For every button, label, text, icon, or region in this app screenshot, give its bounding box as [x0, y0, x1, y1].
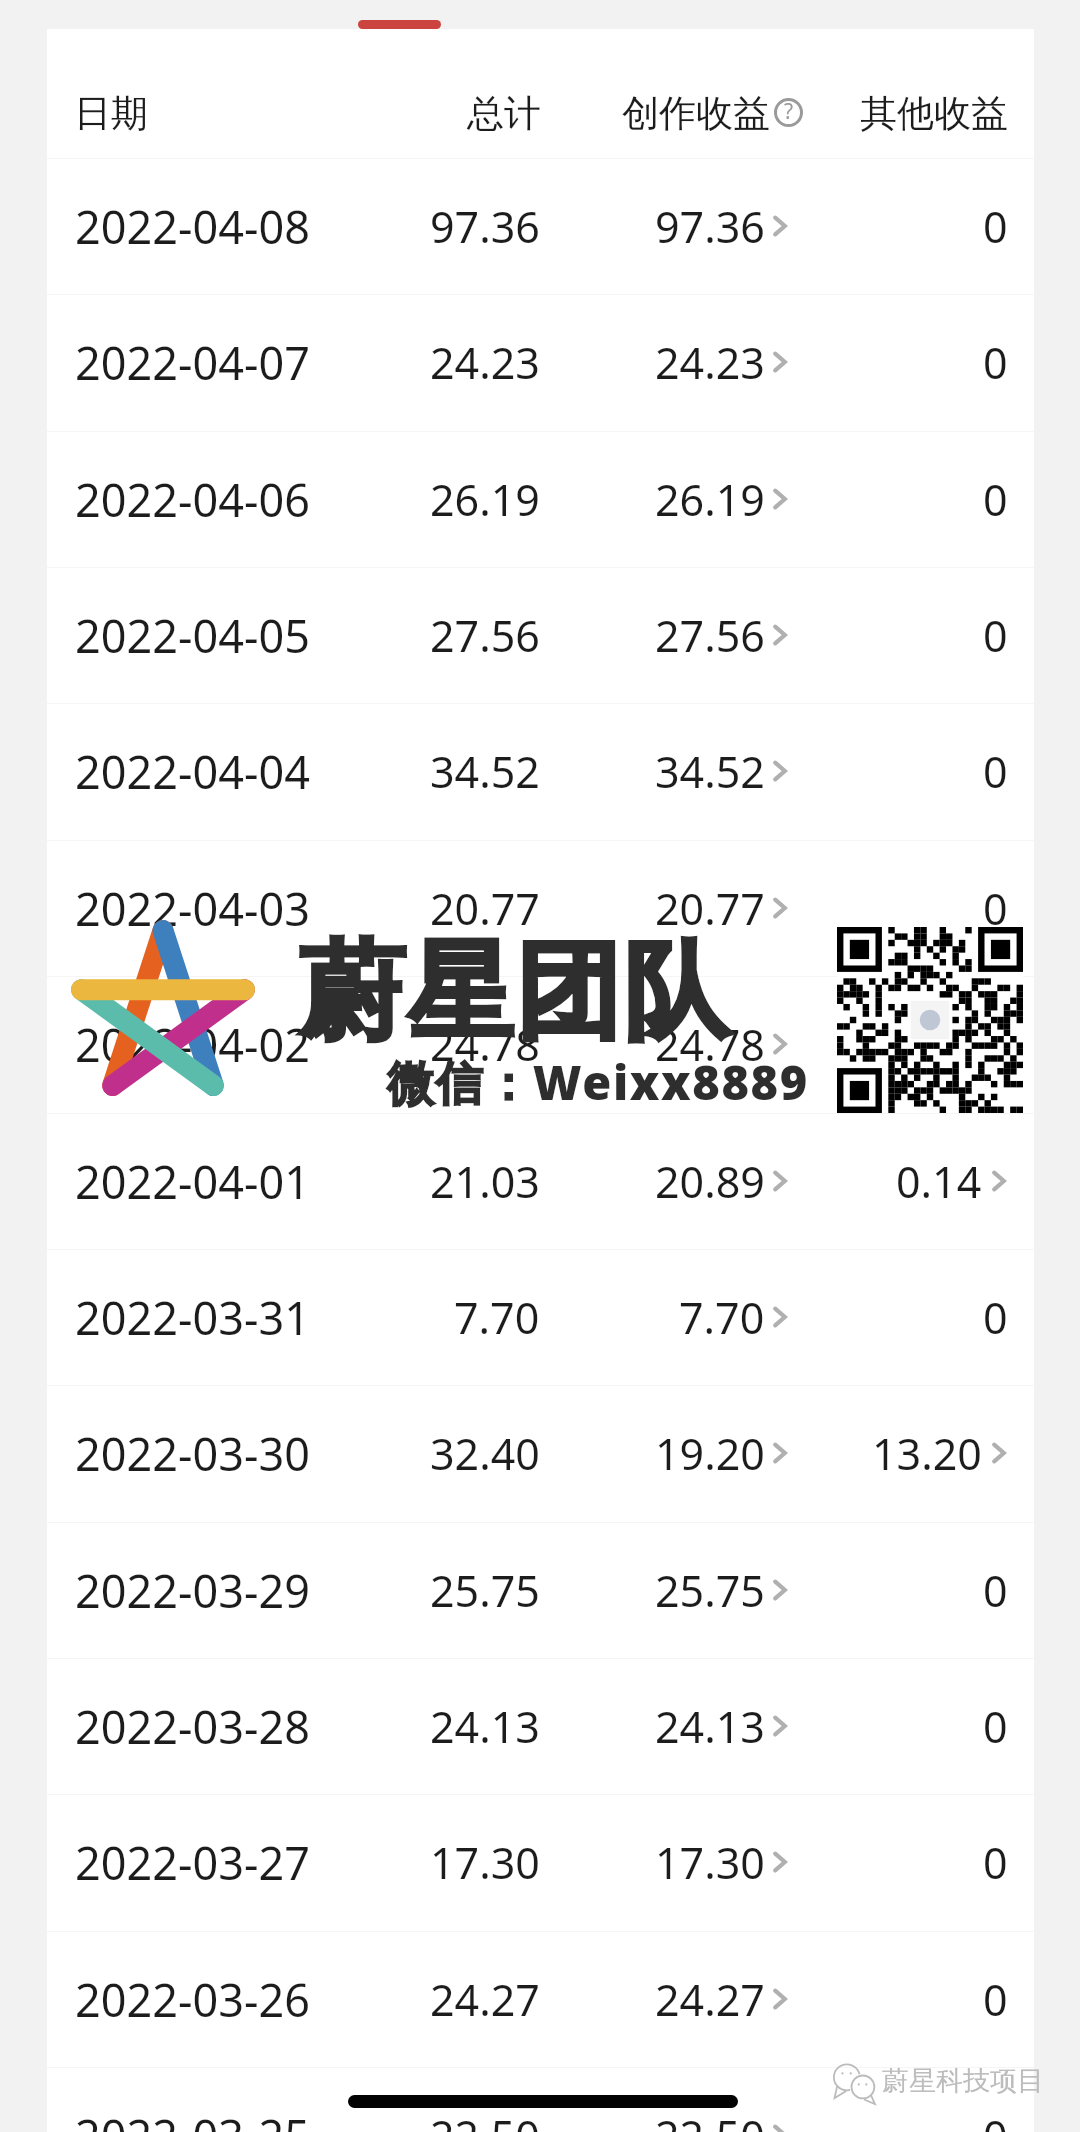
button[interactable]: 2022-03-31	[47, 1249, 1034, 1385]
staticText: 2022-04-01	[75, 1151, 310, 1212]
staticText: 97.36	[655, 197, 765, 256]
button[interactable]: 2022-04-01	[47, 1113, 1034, 1249]
staticText: 0	[983, 1288, 1008, 1347]
staticText: 24.27	[430, 1970, 540, 2029]
staticText: 2022-03-28	[75, 1696, 310, 1757]
staticText: 19.20	[655, 1424, 765, 1483]
staticText: 24.23	[430, 333, 540, 392]
staticText: 7.70	[679, 1288, 765, 1347]
staticText: 2022-04-04	[75, 741, 310, 802]
staticText: 2022-03-31	[75, 1287, 310, 1348]
staticText: 24.13	[430, 1697, 540, 1756]
staticText: 26.19	[430, 470, 540, 529]
staticText: 0	[983, 1697, 1008, 1756]
staticText: 20.77	[655, 879, 765, 938]
staticText: 24.78	[655, 1015, 765, 1074]
staticText: ?	[784, 97, 794, 126]
staticText: 2022-04-08	[75, 196, 310, 257]
staticText: 21.03	[430, 1152, 540, 1211]
button[interactable]: 2022-03-30	[47, 1385, 1034, 1521]
button[interactable]: 2022-04-03	[47, 840, 1034, 976]
button[interactable]: 2022-04-05	[47, 567, 1034, 703]
button[interactable]: 帮助说明	[774, 98, 803, 127]
staticText: 22.50	[655, 2106, 765, 2132]
staticText: 20.77	[430, 879, 540, 938]
staticText: 2022-04-03	[75, 878, 310, 939]
button[interactable]: 2022-03-26	[47, 1931, 1034, 2067]
staticText: 22.50	[430, 2106, 540, 2132]
button[interactable]: 2022-04-08	[47, 158, 1034, 294]
staticText: 蔚星科技项目	[882, 2064, 1044, 2098]
button[interactable]: 2022-04-07	[47, 294, 1034, 430]
button[interactable]: 2022-04-04	[47, 703, 1034, 839]
button[interactable]: 2022-03-28	[47, 1658, 1034, 1794]
staticText: 26.19	[655, 470, 765, 529]
staticText: 0	[983, 1561, 1008, 1620]
staticText: 25.75	[430, 1561, 540, 1620]
staticText: 0	[983, 1970, 1008, 2029]
staticText: 20.89	[655, 1152, 765, 1211]
staticText: 13.20	[872, 1424, 982, 1483]
button[interactable]: 2022-03-29	[47, 1522, 1034, 1658]
staticText: 2022-04-02	[75, 1014, 310, 1075]
staticText: 2022-03-29	[75, 1560, 310, 1621]
staticText: 2022-03-26	[75, 1969, 310, 2030]
staticText: 34.52	[655, 742, 765, 801]
staticText: 17.30	[430, 1833, 540, 1892]
staticText: 日期	[74, 90, 148, 137]
staticText: 蔚星团队	[298, 926, 730, 1060]
staticText: 0	[983, 2106, 1008, 2132]
staticText: 0	[983, 333, 1008, 392]
button[interactable]: 2022-03-25	[47, 2067, 1034, 2132]
staticText: 97.36	[430, 197, 540, 256]
staticText: 0	[983, 470, 1008, 529]
staticText: 总计	[467, 90, 541, 137]
staticText: 0	[983, 1015, 1008, 1074]
button[interactable]: 2022-04-06	[47, 431, 1034, 567]
staticText: 0	[983, 879, 1008, 938]
staticText: 32.40	[430, 1424, 540, 1483]
staticText: 25.75	[655, 1561, 765, 1620]
staticText: 7.70	[454, 1288, 540, 1347]
staticText: 0	[983, 197, 1008, 256]
staticText: 创作收益	[622, 90, 770, 137]
button[interactable]: 2022-04-02	[47, 976, 1034, 1112]
staticText: 24.23	[655, 333, 765, 392]
staticText: 2022-04-06	[75, 469, 310, 530]
staticText: 其他收益	[860, 90, 1008, 137]
staticText: 2022-03-27	[75, 1832, 310, 1893]
staticText: 0	[983, 742, 1008, 801]
staticText: 2022-03-30	[75, 1423, 310, 1484]
staticText: 2022-04-05	[75, 605, 310, 666]
staticText: 24.78	[430, 1015, 540, 1074]
staticText: 27.56	[655, 606, 765, 665]
staticText: 2022-03-25	[75, 2105, 310, 2132]
button[interactable]: 2022-03-27	[47, 1794, 1034, 1930]
staticText: 0.14	[896, 1152, 982, 1211]
staticText: 24.27	[655, 1970, 765, 2029]
staticText: 27.56	[430, 606, 540, 665]
staticText: 微信：Weixx8889	[387, 1050, 809, 1114]
staticText: 0	[983, 1833, 1008, 1892]
staticText: 24.13	[655, 1697, 765, 1756]
staticText: 34.52	[430, 742, 540, 801]
staticText: 2022-04-07	[75, 332, 310, 393]
staticText: 0	[983, 606, 1008, 665]
staticText: 17.30	[655, 1833, 765, 1892]
